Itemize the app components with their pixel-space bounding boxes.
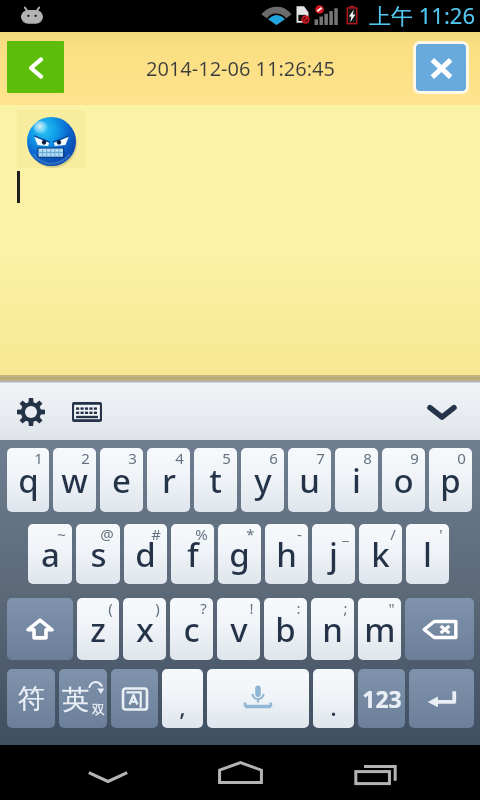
button[interactable]: p bbox=[429, 448, 472, 512]
staticText: ~ bbox=[57, 524, 66, 544]
button[interactable]: Recent apps bbox=[330, 745, 420, 800]
button[interactable]: n bbox=[311, 598, 354, 660]
button[interactable]: c bbox=[170, 598, 213, 660]
staticText: r bbox=[162, 458, 176, 503]
button[interactable]: Shift bbox=[7, 598, 73, 660]
staticText: # bbox=[151, 524, 161, 544]
button[interactable]: i bbox=[335, 448, 378, 512]
staticText: f bbox=[187, 532, 199, 577]
button[interactable]: r bbox=[147, 448, 190, 512]
staticText: 7 bbox=[316, 448, 325, 468]
staticText: 2014-12-06 11:26:45 bbox=[146, 55, 335, 82]
staticText: . bbox=[330, 690, 337, 723]
button[interactable]: m bbox=[358, 598, 401, 660]
button[interactable]: b bbox=[264, 598, 307, 660]
button[interactable]: Keyboard layout bbox=[111, 669, 158, 728]
staticText: k bbox=[371, 532, 390, 577]
button[interactable]: Hide keyboard bbox=[418, 388, 466, 436]
staticText: m bbox=[364, 607, 396, 652]
button[interactable]: q bbox=[7, 448, 49, 512]
staticText: p bbox=[440, 458, 461, 503]
button[interactable]: Chinese English toggle bbox=[59, 669, 107, 728]
staticText: : bbox=[296, 598, 301, 618]
staticText: h bbox=[276, 532, 297, 577]
staticText: l bbox=[423, 532, 432, 577]
staticText: o bbox=[393, 458, 414, 503]
staticText: 0 bbox=[457, 448, 466, 468]
staticText: * bbox=[246, 524, 255, 544]
button[interactable]: . bbox=[313, 669, 354, 728]
button[interactable]: d bbox=[124, 524, 167, 584]
button[interactable]: Backspace bbox=[405, 598, 474, 660]
button[interactable]: Switch input method bbox=[63, 388, 111, 436]
staticText: @ bbox=[100, 524, 114, 544]
staticText: b bbox=[275, 607, 296, 652]
staticText: , bbox=[179, 690, 186, 723]
staticText: ; bbox=[343, 598, 348, 618]
staticText: w bbox=[61, 458, 88, 503]
button[interactable]: w bbox=[53, 448, 96, 512]
button[interactable]: Home bbox=[195, 745, 285, 800]
staticText: ( bbox=[108, 598, 113, 618]
staticText: a bbox=[41, 532, 60, 577]
staticText: 123 bbox=[362, 683, 402, 714]
staticText: 1 bbox=[34, 448, 43, 468]
button[interactable]: Back bbox=[63, 745, 153, 800]
staticText: x bbox=[136, 607, 154, 652]
staticText: ! bbox=[249, 598, 254, 618]
button[interactable]: Back bbox=[7, 41, 64, 93]
button[interactable]: e bbox=[100, 448, 143, 512]
staticText: ) bbox=[155, 598, 160, 618]
button[interactable] bbox=[0, 105, 480, 375]
staticText: " bbox=[388, 598, 395, 618]
staticText: g bbox=[229, 532, 250, 577]
staticText: 9 bbox=[410, 448, 419, 468]
staticText: d bbox=[135, 532, 156, 577]
staticText: e bbox=[112, 458, 131, 503]
button[interactable]: f bbox=[171, 524, 214, 584]
staticText: 5 bbox=[222, 448, 231, 468]
button[interactable]: Enter bbox=[409, 669, 474, 728]
staticText: q bbox=[18, 458, 39, 503]
staticText: 符 bbox=[18, 682, 45, 716]
staticText: n bbox=[322, 607, 343, 652]
staticText: 4 bbox=[175, 448, 184, 468]
button[interactable]: z bbox=[77, 598, 119, 660]
button[interactable]: y bbox=[241, 448, 284, 512]
staticText: u bbox=[299, 458, 320, 503]
staticText: i bbox=[352, 458, 361, 503]
staticText: 上午 11:26 bbox=[369, 0, 475, 30]
staticText: / bbox=[390, 524, 396, 544]
button[interactable]: l bbox=[406, 524, 449, 584]
button[interactable]: , bbox=[162, 669, 203, 728]
button[interactable]: Close bbox=[416, 44, 466, 91]
staticText: 2 bbox=[81, 448, 90, 468]
button[interactable]: Settings bbox=[8, 389, 53, 434]
staticText: _ bbox=[342, 524, 349, 544]
staticText: 双 bbox=[92, 701, 105, 717]
button[interactable]: k bbox=[359, 524, 402, 584]
staticText: j bbox=[329, 532, 338, 577]
staticText: v bbox=[230, 607, 248, 652]
staticText: 6 bbox=[269, 448, 278, 468]
button[interactable]: v bbox=[217, 598, 260, 660]
button[interactable]: a bbox=[28, 524, 72, 584]
button[interactable]: Numbers bbox=[358, 669, 405, 728]
button[interactable]: s bbox=[76, 524, 120, 584]
button[interactable]: u bbox=[288, 448, 331, 512]
button[interactable]: h bbox=[265, 524, 308, 584]
staticText: z bbox=[90, 607, 106, 652]
staticText: - bbox=[297, 524, 302, 544]
button[interactable]: t bbox=[194, 448, 237, 512]
staticText: ' bbox=[439, 524, 443, 544]
button[interactable]: Space bbox=[207, 669, 309, 728]
button[interactable]: g bbox=[218, 524, 261, 584]
staticText: y bbox=[254, 458, 272, 503]
staticText: c bbox=[183, 607, 200, 652]
button[interactable]: x bbox=[123, 598, 166, 660]
staticText: % bbox=[195, 524, 208, 544]
staticText: 3 bbox=[128, 448, 137, 468]
button[interactable]: j bbox=[312, 524, 355, 584]
button[interactable]: o bbox=[382, 448, 425, 512]
button[interactable]: Symbols bbox=[7, 669, 55, 728]
